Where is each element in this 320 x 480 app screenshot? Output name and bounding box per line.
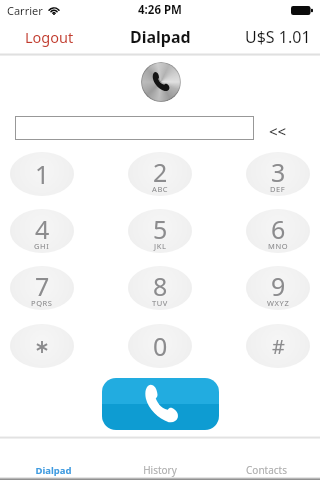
staticText: TUV: [152, 298, 168, 308]
other: Battery: [291, 6, 313, 15]
staticText: 7: [35, 269, 50, 303]
staticText: 5: [153, 212, 168, 246]
staticText: JKL: [154, 241, 167, 251]
button[interactable]: 8: [128, 266, 192, 310]
other: Wi-Fi: [49, 7, 59, 15]
button[interactable]: 2: [128, 152, 192, 196]
button[interactable]: 7: [10, 266, 74, 310]
staticText: WXYZ: [267, 298, 290, 308]
staticText: Logout: [25, 27, 74, 47]
staticText: <<: [269, 121, 287, 141]
button[interactable]: 9: [246, 266, 310, 310]
button[interactable]: 4: [10, 209, 74, 253]
button[interactable]: 6: [246, 209, 310, 253]
button[interactable]: #: [246, 324, 310, 368]
staticText: ABC: [152, 184, 169, 194]
staticText: U$S 1.01: [245, 26, 311, 48]
button[interactable]: Logout: [0, 23, 86, 53]
button[interactable]: [10, 324, 74, 368]
button[interactable]: 5: [128, 209, 192, 253]
button[interactable]: Contacts: [213, 462, 320, 478]
staticText: DEF: [270, 184, 286, 194]
staticText: 1: [35, 157, 50, 191]
button[interactable]: Call: [102, 378, 219, 430]
staticText: 2: [153, 155, 168, 189]
staticText: Dialpad: [35, 464, 72, 477]
staticText: #: [272, 333, 285, 360]
button[interactable]: [15, 116, 254, 140]
staticText: 6: [271, 212, 286, 246]
button[interactable]: U$S 1.01: [233, 22, 320, 54]
staticText: 3: [271, 155, 286, 189]
button[interactable]: Contact: [141, 62, 181, 102]
staticText: PQRS: [31, 298, 53, 308]
staticText: 8: [153, 269, 168, 303]
button[interactable]: 3: [246, 152, 310, 196]
staticText: Carrier: [7, 3, 43, 18]
staticText: Dialpad: [130, 26, 191, 48]
button[interactable]: 0: [128, 324, 192, 368]
staticText: MNO: [268, 241, 289, 251]
staticText: GHI: [34, 241, 50, 251]
button[interactable]: 1: [10, 152, 74, 196]
staticText: Contacts: [246, 463, 287, 477]
staticText: 0: [153, 329, 168, 363]
button[interactable]: Dialpad: [0, 462, 106, 478]
button[interactable]: History: [106, 462, 213, 478]
staticText: 4:26 PM: [138, 2, 182, 18]
staticText: 4: [35, 212, 50, 246]
staticText: 9: [271, 269, 286, 303]
button[interactable]: Backspace: [264, 117, 292, 145]
staticText: History: [143, 463, 177, 477]
